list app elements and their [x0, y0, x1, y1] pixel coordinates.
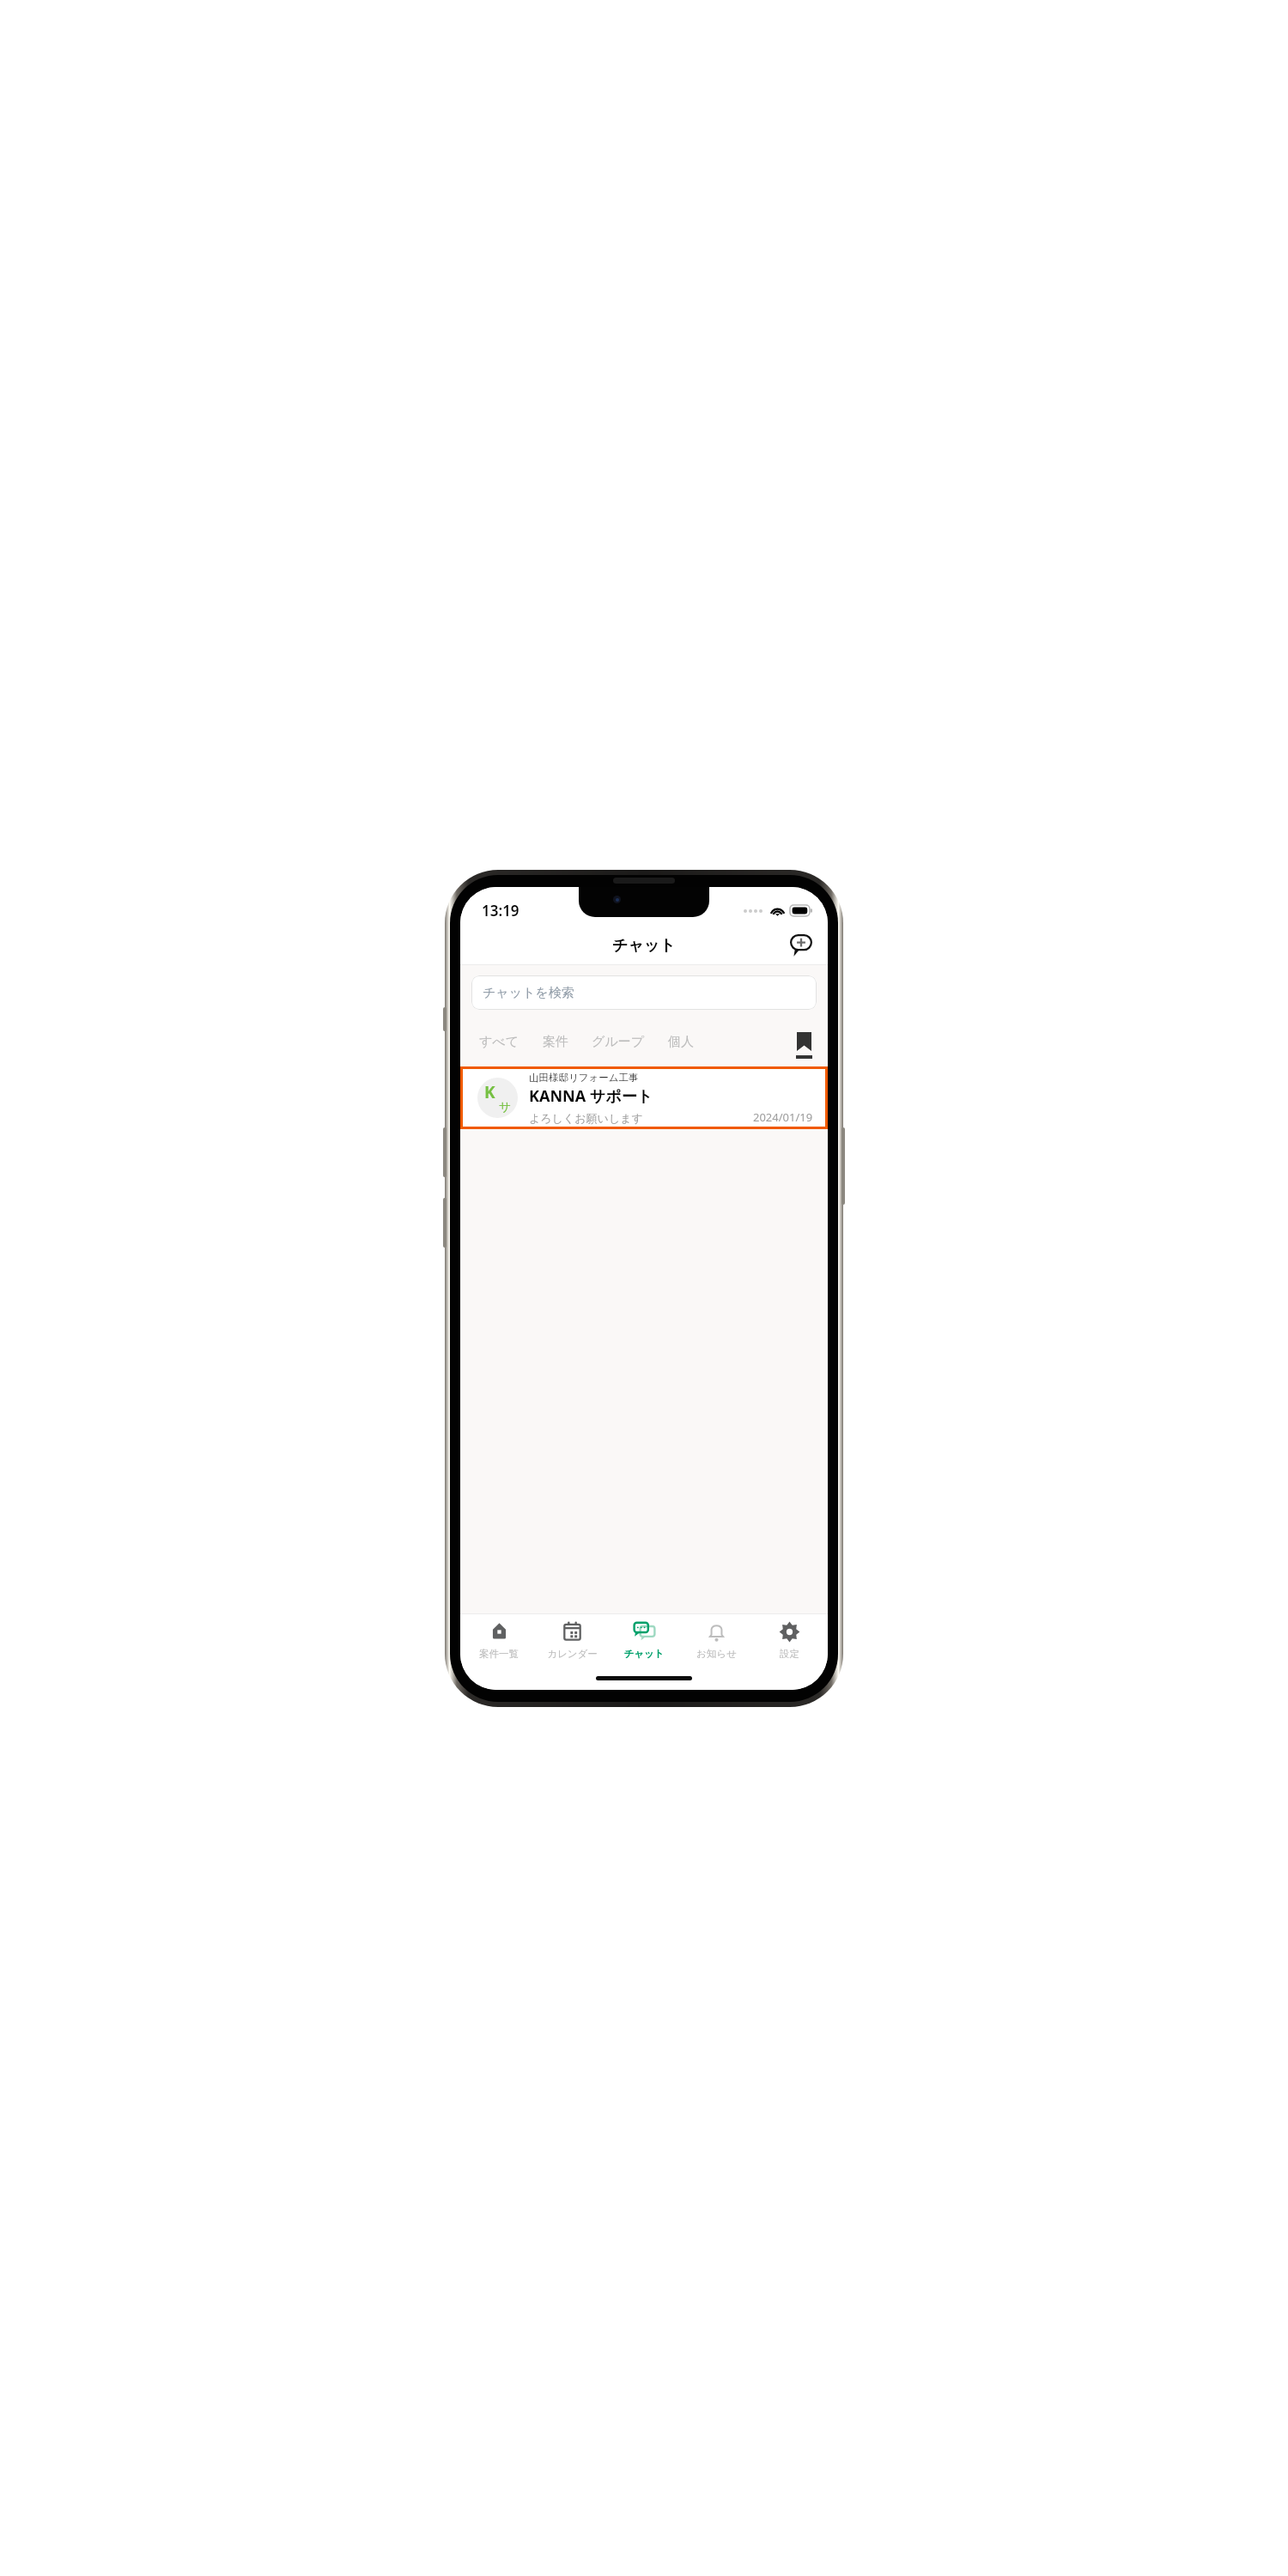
staticText: すべて — [479, 1034, 519, 1050]
button[interactable]: Bookmarked chats — [796, 1032, 812, 1059]
button[interactable]: お知らせ — [683, 1614, 750, 1668]
button[interactable]: K — [463, 1069, 825, 1127]
staticText: カレンダー — [547, 1648, 598, 1660]
button[interactable]: カレンダー — [538, 1614, 605, 1668]
staticText: サ — [499, 1100, 512, 1115]
staticText: グループ — [592, 1034, 645, 1050]
button[interactable]: 案件 — [541, 1030, 570, 1054]
button[interactable]: 個人 — [666, 1030, 696, 1054]
button[interactable]: チャット — [611, 1614, 677, 1668]
staticText: チャット — [612, 936, 676, 956]
button[interactable]: 設定 — [756, 1614, 823, 1668]
staticText: 案件一覧 — [479, 1648, 519, 1660]
staticText: 13:19 — [482, 901, 519, 920]
staticText: 山田様邸リフォーム工事 — [529, 1072, 639, 1084]
button[interactable]: 案件一覧 — [465, 1614, 532, 1668]
staticText: KANNA サポート — [529, 1085, 653, 1107]
staticText: お知らせ — [696, 1648, 737, 1660]
staticText: K — [484, 1081, 495, 1103]
button[interactable]: New chat — [787, 931, 816, 960]
staticText: 個人 — [668, 1034, 694, 1050]
staticText: よろしくお願いします — [529, 1111, 643, 1125]
staticText: チャット — [623, 1648, 665, 1660]
staticText: チャットを検索 — [483, 985, 574, 1001]
staticText: 2024/01/19 — [753, 1109, 813, 1125]
staticText: 設定 — [780, 1648, 799, 1660]
button[interactable]: グループ — [590, 1030, 647, 1054]
button[interactable]: すべて — [477, 1030, 521, 1054]
staticText: 案件 — [543, 1034, 568, 1050]
button[interactable]: チャットを検索 — [471, 975, 817, 1010]
